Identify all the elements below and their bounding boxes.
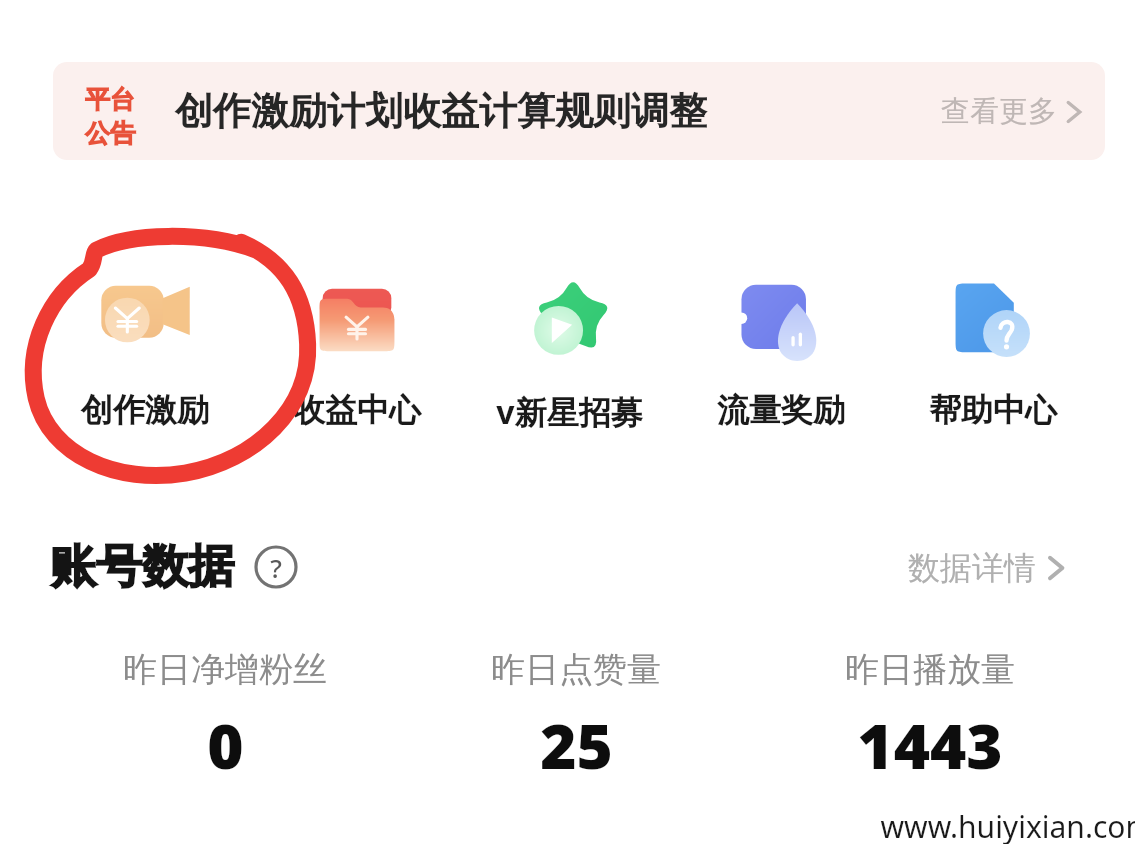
staticText: 昨日播放量 [845,648,1015,691]
button[interactable]: 昨日播放量 [760,648,1100,787]
button[interactable]: 昨日净增粉丝 [55,648,395,787]
button[interactable]: 平台 [53,62,1105,160]
staticText: 平台 [85,84,135,115]
button[interactable]: 账号数据 [50,538,298,596]
staticText: 0 [207,703,244,787]
button[interactable]: 帮助中心 [887,268,1099,430]
button[interactable]: 收益中心 [251,268,463,430]
staticText: 公告 [85,118,135,149]
staticText: 1443 [857,703,1003,787]
button[interactable]: 查看更多 [941,93,1083,130]
button[interactable]: 流量奖励 [675,268,887,430]
staticText: ? [270,550,282,585]
staticText: 帮助中心 [929,390,1057,430]
staticText: 数据详情 [908,548,1036,588]
button[interactable]: 创作激励 [39,268,251,430]
staticText: 昨日点赞量 [491,648,661,691]
staticText: 25 [540,703,613,787]
staticText: 创作激励 [81,390,209,430]
staticText: 收益中心 [293,390,421,430]
staticText: 账号数据 [50,538,234,596]
staticText: 查看更多 [941,93,1057,130]
staticText: www.huiyixian.com [880,806,1135,844]
staticText: v新星招募 [496,390,643,434]
staticText: 昨日净增粉丝 [123,648,327,691]
button[interactable]: 数据详情 [908,548,1066,588]
button[interactable]: v新星招募 [463,268,675,434]
staticText: 流量奖励 [717,390,845,430]
button[interactable]: 昨日点赞量 [406,648,746,787]
staticText: 创作激励计划收益计算规则调整 [175,87,707,135]
other: Help [254,545,298,589]
